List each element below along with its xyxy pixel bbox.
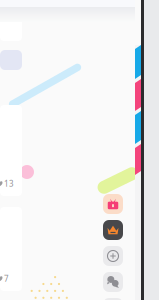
button[interactable]: Leaderboard <box>103 220 123 240</box>
button[interactable] <box>0 3 22 41</box>
button[interactable]: Send a gift <box>103 194 123 214</box>
button[interactable]: Follow <box>103 246 123 266</box>
staticText: 7 <box>4 273 9 284</box>
button[interactable]: 7 <box>0 207 22 291</box>
staticText: 13 <box>4 178 14 189</box>
button[interactable]: More options <box>103 298 123 300</box>
button[interactable]: 13 <box>0 105 22 196</box>
button[interactable]: Share to WeChat <box>103 272 123 292</box>
